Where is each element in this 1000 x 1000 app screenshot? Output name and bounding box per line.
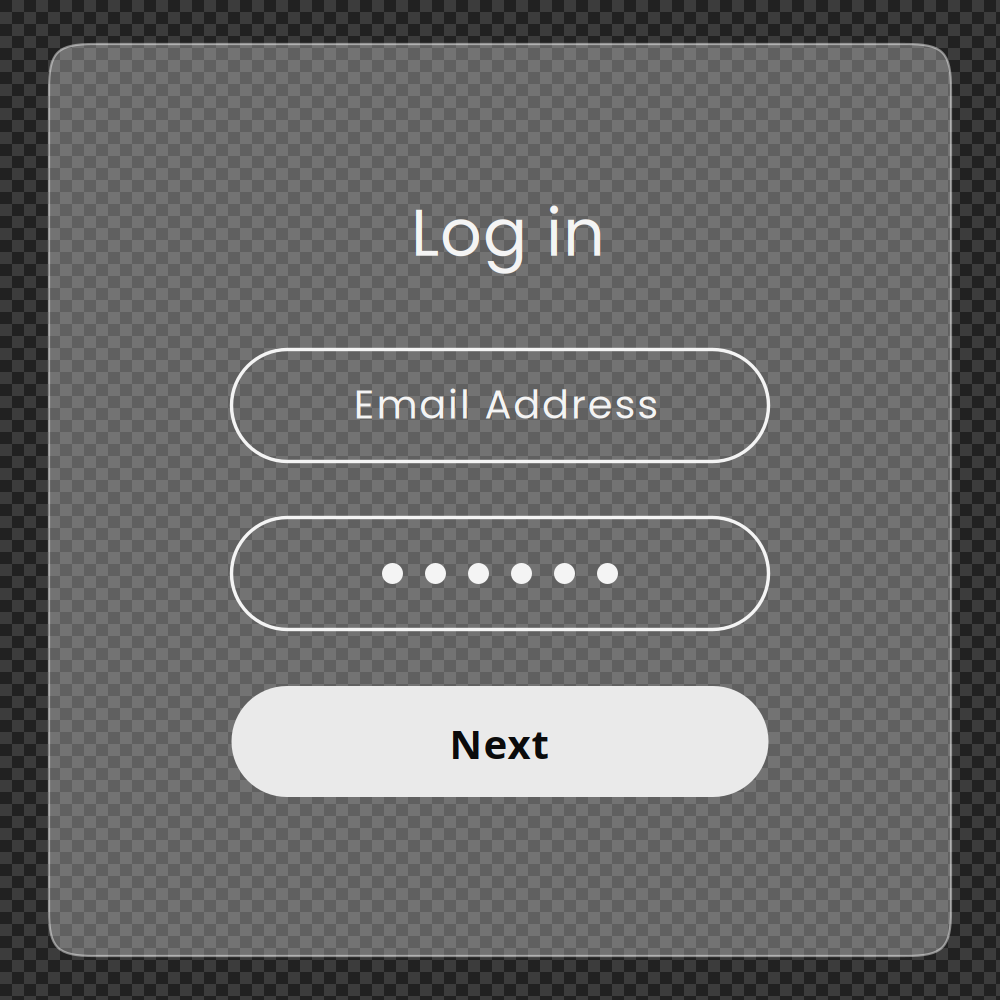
- staticText: Next: [449, 717, 548, 770]
- button[interactable]: Email Address: [231, 349, 768, 461]
- staticText: Log in: [411, 187, 605, 279]
- button[interactable]: Next: [231, 686, 768, 797]
- button[interactable]: [231, 517, 768, 629]
- staticText: Email Address: [354, 376, 658, 432]
